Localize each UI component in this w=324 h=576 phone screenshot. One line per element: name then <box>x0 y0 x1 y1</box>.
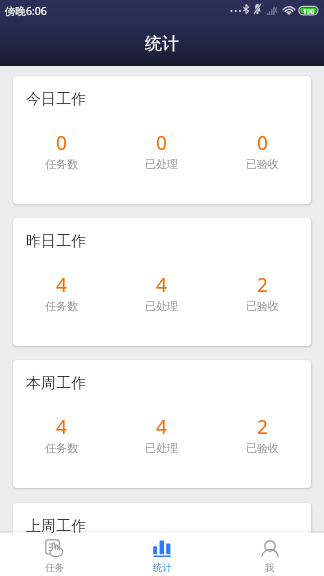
staticText: 统计 <box>153 562 172 574</box>
staticText: 100 <box>303 7 315 16</box>
staticText: 0 <box>56 557 67 576</box>
button[interactable]: 昨日工作 <box>13 218 311 346</box>
button[interactable]: 统计 <box>108 533 216 576</box>
staticText: 4 <box>56 414 67 440</box>
staticText: 已处理 <box>145 441 178 455</box>
staticText: 0 <box>156 130 167 156</box>
staticText: 已验收 <box>246 441 279 455</box>
staticText: 0 <box>257 557 268 576</box>
button[interactable]: 上周工作 <box>13 503 311 576</box>
staticText: 已验收 <box>246 299 279 313</box>
staticText: 已处理 <box>145 157 178 171</box>
other: 我 <box>261 540 279 557</box>
button[interactable]: 本周工作 <box>13 360 311 488</box>
staticText: 2 <box>257 272 268 298</box>
staticText: 已处理 <box>145 299 178 313</box>
staticText: 任务 <box>45 562 64 574</box>
staticText: 2 <box>257 414 268 440</box>
button[interactable]: 我 <box>216 533 324 576</box>
staticText: 傍晚6:06 <box>5 4 47 18</box>
staticText: 上周工作 <box>26 517 86 536</box>
staticText: 4 <box>156 414 167 440</box>
button[interactable]: 任务 <box>0 533 108 576</box>
staticText: 0 <box>257 130 268 156</box>
staticText: 任务数 <box>45 441 78 455</box>
staticText: 0 <box>156 557 167 576</box>
staticText: 统计 <box>145 33 179 54</box>
staticText: 我 <box>265 562 275 574</box>
staticText: 今日工作 <box>26 90 86 109</box>
staticText: 昨日工作 <box>26 232 86 251</box>
staticText: 本周工作 <box>26 374 86 393</box>
button[interactable]: 今日工作 <box>13 76 311 204</box>
staticText: 任务数 <box>45 157 78 171</box>
staticText: 0 <box>56 130 67 156</box>
other: 任务 <box>45 539 64 557</box>
staticText: 任务数 <box>45 299 78 313</box>
staticText: 4 <box>56 272 67 298</box>
staticText: 已验收 <box>246 157 279 171</box>
staticText: 4 <box>156 272 167 298</box>
other: 统计 <box>153 540 171 557</box>
